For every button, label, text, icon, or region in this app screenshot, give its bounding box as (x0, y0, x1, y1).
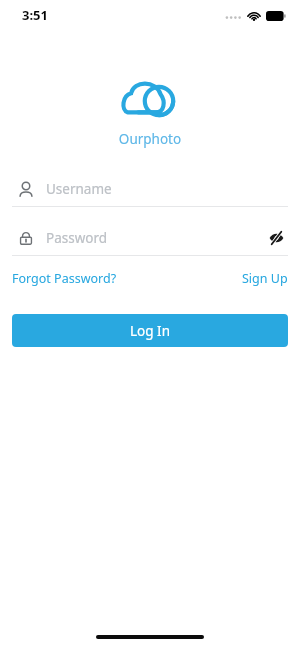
button[interactable]: Log In (12, 314, 288, 347)
staticText: Sign Up (242, 270, 288, 287)
button[interactable]: Show password (264, 226, 288, 250)
staticText: Ourphoto (0, 130, 300, 148)
button[interactable]: Forgot Password? (12, 265, 117, 292)
button[interactable]: Sign Up (242, 265, 288, 292)
staticText: Password (46, 229, 264, 247)
staticText: Forgot Password? (12, 270, 117, 287)
staticText: Username (46, 180, 112, 198)
button[interactable]: Password (0, 221, 300, 255)
staticText: 3:51 (22, 6, 48, 24)
button[interactable]: Username (0, 172, 300, 206)
staticText: Log In (130, 322, 170, 340)
